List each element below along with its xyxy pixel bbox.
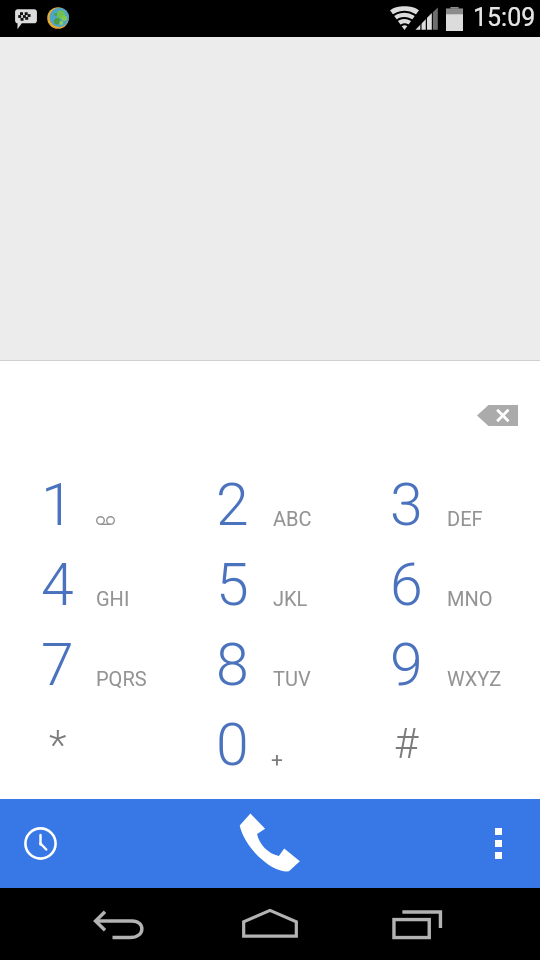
button[interactable]: 8 <box>180 630 360 710</box>
button[interactable]: Call history <box>4 799 76 888</box>
staticText: 9 <box>390 630 423 699</box>
staticText: JKL <box>273 587 308 610</box>
button[interactable]: 5 <box>180 550 360 630</box>
staticText: * <box>49 721 67 769</box>
staticText: 2 <box>216 470 249 539</box>
button[interactable]: 3 <box>360 470 540 550</box>
staticText: 8 <box>216 630 249 699</box>
button[interactable]: 9 <box>360 630 540 710</box>
button[interactable]: 4 <box>0 550 180 630</box>
button[interactable]: 2 <box>180 470 360 550</box>
staticText: 15:09 <box>473 3 536 32</box>
staticText: DEF <box>447 507 483 530</box>
staticText: PQRS <box>96 667 147 690</box>
staticText: 0 <box>216 710 249 779</box>
staticText: + <box>271 748 283 773</box>
button[interactable]: * <box>0 710 180 790</box>
staticText: # <box>394 719 419 768</box>
button[interactable]: Back <box>59 888 179 960</box>
button[interactable]: # <box>360 710 540 790</box>
staticText: TUV <box>273 667 311 690</box>
staticText: 5 <box>216 550 249 619</box>
button[interactable]: Dial <box>205 799 335 888</box>
button[interactable]: 0 <box>180 710 360 790</box>
staticText: WXYZ <box>447 667 502 690</box>
button[interactable]: 6 <box>360 550 540 630</box>
staticText: 7 <box>41 630 74 699</box>
button[interactable]: Recent apps <box>360 888 480 960</box>
staticText: 4 <box>41 550 74 619</box>
staticText: 3 <box>390 470 423 539</box>
button[interactable]: 7 <box>0 630 180 710</box>
button[interactable]: Home <box>210 888 330 960</box>
staticText: ABC <box>273 507 312 530</box>
staticText: 1 <box>41 470 74 539</box>
button[interactable]: Backspace <box>465 391 529 439</box>
button[interactable]: More options <box>468 799 540 888</box>
button[interactable]: 1 <box>0 470 180 550</box>
staticText: MNO <box>447 587 493 610</box>
staticText: GHI <box>96 587 130 610</box>
staticText: 6 <box>390 550 423 619</box>
